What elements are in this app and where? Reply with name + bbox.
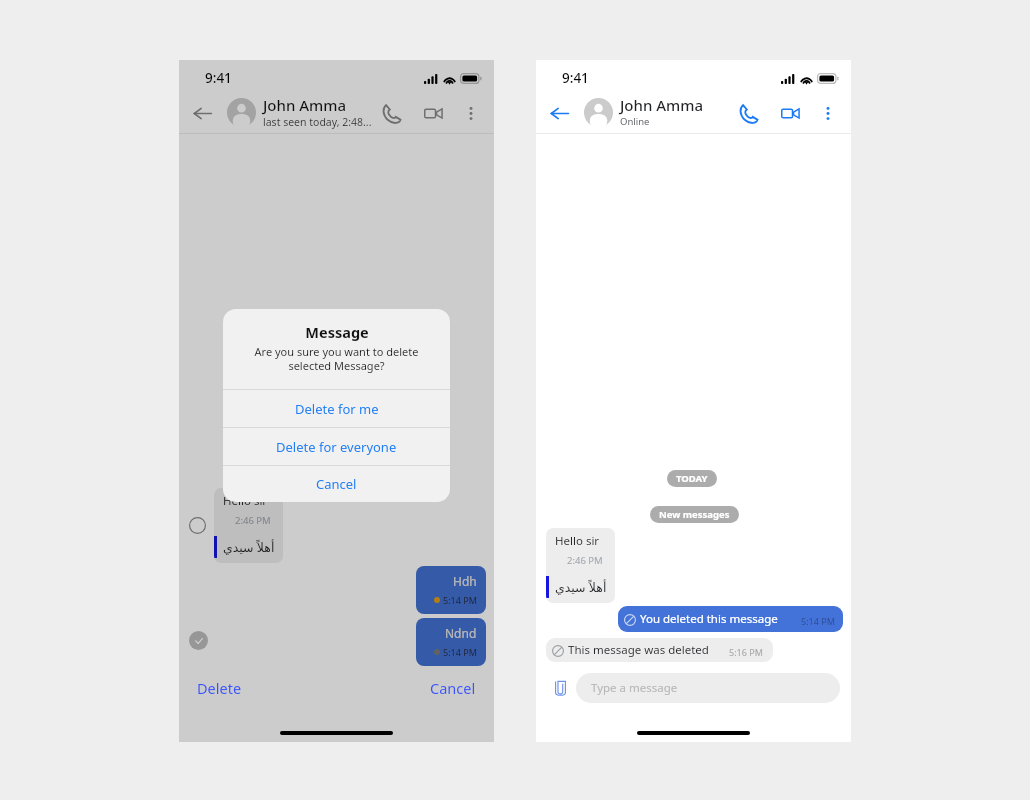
- button[interactable]: More options: [819, 104, 837, 122]
- button[interactable]: TODAY: [667, 470, 717, 487]
- staticText: Cancel: [316, 475, 357, 493]
- staticText: John Amma: [263, 95, 347, 115]
- button[interactable]: You deleted this message: [618, 606, 843, 632]
- button[interactable]: Type a message: [576, 673, 840, 703]
- staticText: أهلاً سيدي: [555, 579, 607, 596]
- staticText: TODAY: [676, 472, 708, 485]
- staticText: Are you sure you want to delete selected…: [236, 344, 437, 373]
- staticText: Delete for everyone: [276, 438, 397, 456]
- staticText: Delete: [197, 678, 242, 698]
- staticText: 9:41: [562, 69, 589, 87]
- button[interactable]: Call: [378, 100, 404, 126]
- staticText: Hello sir: [223, 493, 268, 509]
- staticText: 2:46 PM: [567, 554, 603, 567]
- button[interactable]: Hello sir: [214, 488, 283, 563]
- staticText: This message was deleted: [568, 642, 709, 658]
- staticText: Hello sir: [555, 533, 600, 549]
- staticText: Cancel: [430, 678, 476, 698]
- button[interactable]: Attach file: [549, 677, 571, 699]
- staticText: Online: [620, 115, 650, 128]
- staticText: 9:41: [205, 69, 232, 87]
- button[interactable]: Delete for everyone: [223, 428, 450, 465]
- staticText: Ndnd: [445, 625, 477, 641]
- staticText: Type a message: [591, 680, 678, 696]
- button[interactable]: Back: [547, 101, 571, 125]
- button[interactable]: Delete for me: [223, 390, 450, 427]
- button[interactable]: Delete: [197, 678, 242, 698]
- button[interactable]: Call: [735, 100, 761, 126]
- button[interactable]: Hdh: [416, 566, 486, 614]
- button[interactable]: This message was deleted: [546, 638, 773, 662]
- staticText: 5:14 PM: [801, 615, 835, 627]
- button[interactable]: [189, 517, 206, 534]
- button[interactable]: More options: [462, 104, 480, 122]
- staticText: 5:14 PM: [443, 594, 477, 606]
- staticText: Delete for me: [295, 400, 379, 418]
- staticText: 5:14 PM: [443, 646, 477, 658]
- button[interactable]: Back: [190, 101, 214, 125]
- staticText: أهلاً سيدي: [223, 539, 275, 556]
- staticText: 5:16 PM: [729, 646, 763, 658]
- button[interactable]: New messages: [650, 506, 739, 523]
- staticText: Message: [305, 322, 369, 342]
- button[interactable]: Selected: [189, 631, 208, 650]
- staticText: Hdh: [453, 573, 477, 589]
- staticText: last seen today, 2:48...: [263, 115, 372, 129]
- staticText: John Amma: [620, 95, 704, 115]
- button[interactable]: Ndnd: [416, 618, 486, 666]
- staticText: You deleted this message: [640, 611, 778, 627]
- button[interactable]: Hello sir: [546, 528, 615, 603]
- button[interactable]: Cancel: [223, 466, 450, 502]
- button[interactable]: Video call: [422, 102, 444, 124]
- button[interactable]: Video call: [779, 102, 801, 124]
- staticText: New messages: [659, 508, 730, 521]
- staticText: 2:46 PM: [235, 514, 271, 527]
- button[interactable]: Cancel: [430, 678, 476, 698]
